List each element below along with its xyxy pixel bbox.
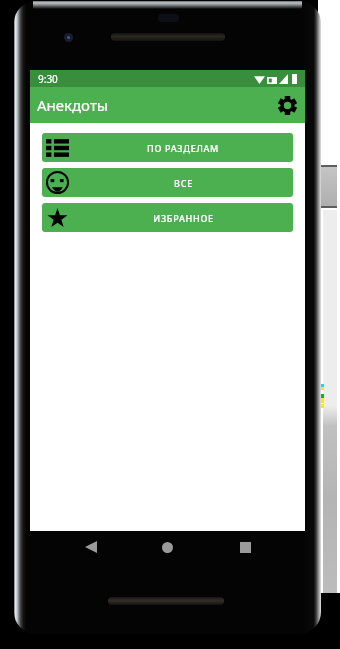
staticText: ПО РАЗДЕЛАМ (147, 142, 219, 154)
button[interactable]: Home (155, 535, 179, 559)
staticText: 9:30 (38, 72, 58, 86)
staticText: ВСЕ (174, 177, 193, 189)
button[interactable]: ПО РАЗДЕЛАМ (42, 133, 293, 162)
button[interactable]: Recents (233, 535, 257, 559)
staticText: Анекдоты (37, 95, 109, 115)
button[interactable]: Settings (276, 94, 298, 116)
button[interactable]: Back (79, 535, 103, 559)
button[interactable]: ИЗБРАННОЕ (42, 203, 293, 232)
button[interactable]: ВСЕ (42, 168, 293, 197)
staticText: ИЗБРАННОЕ (153, 212, 214, 224)
